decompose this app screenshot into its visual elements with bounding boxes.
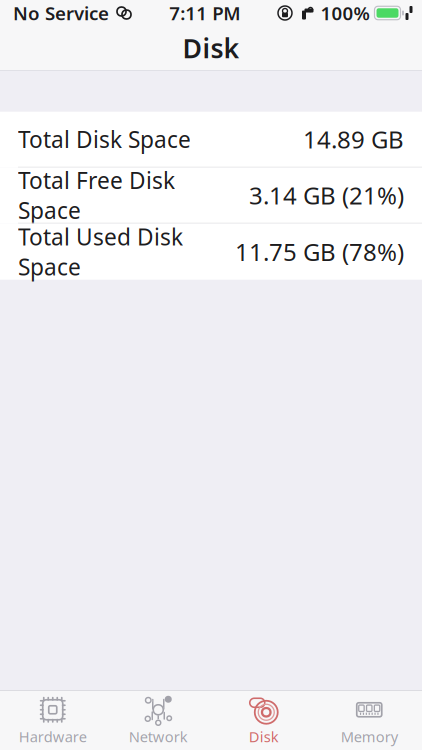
staticText: Disk: [182, 30, 239, 66]
staticText: Network: [129, 727, 188, 746]
button[interactable]: Total Free Disk Space: [0, 168, 422, 224]
button[interactable]: Memory: [316, 691, 422, 750]
button[interactable]: Disk: [211, 691, 316, 750]
button[interactable]: Total Used Disk Space: [0, 224, 422, 280]
button[interactable]: Hardware: [0, 691, 105, 750]
button[interactable]: Disk: [0, 26, 422, 70]
staticText: 11.75 GB (78%): [235, 236, 404, 268]
staticText: Hardware: [19, 727, 87, 746]
staticText: Memory: [341, 727, 398, 746]
staticText: No Service: [13, 1, 109, 25]
staticText: Total Disk Space: [18, 124, 191, 154]
staticText: Total Used Disk Space: [18, 222, 183, 282]
button[interactable]: Total Disk Space: [0, 112, 422, 168]
staticText: Total Free Disk Space: [18, 165, 175, 225]
staticText: Disk: [249, 727, 279, 746]
staticText: 14.89 GB: [303, 123, 404, 155]
staticText: 7:11 PM: [169, 1, 240, 25]
staticText: 100%: [320, 1, 369, 25]
staticText: 3.14 GB (21%): [249, 179, 404, 211]
button[interactable]: Network: [105, 691, 211, 750]
